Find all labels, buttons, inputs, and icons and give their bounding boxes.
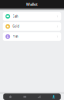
button[interactable]: Cash	[3, 12, 61, 21]
button[interactable]: Gold	[3, 22, 61, 31]
button[interactable]: Plan	[3, 32, 61, 41]
button[interactable]: Cards	[18, 93, 32, 100]
staticText: Wallet	[26, 2, 38, 7]
button[interactable]: Home	[3, 93, 18, 100]
button[interactable]: Account	[46, 93, 61, 100]
staticText: Cash	[12, 15, 18, 18]
staticText: Plan	[12, 35, 18, 38]
button[interactable]: Activity	[32, 93, 46, 100]
staticText: Gold	[12, 25, 19, 28]
